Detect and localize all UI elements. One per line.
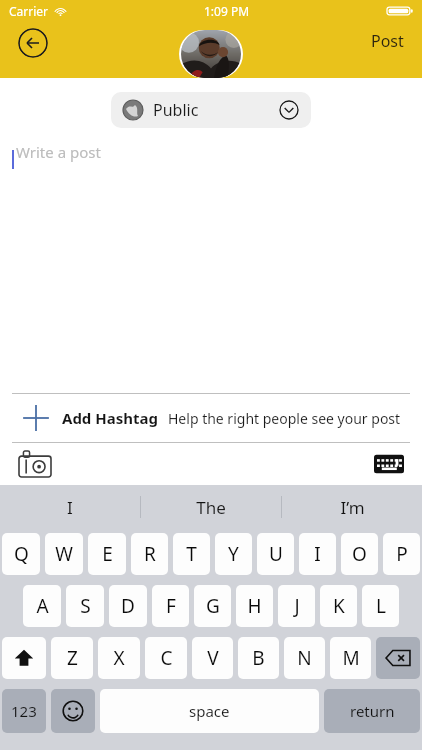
staticText: Public <box>153 99 199 121</box>
button[interactable]: E <box>88 533 126 575</box>
staticText: I <box>67 496 73 519</box>
button[interactable]: B <box>238 637 279 679</box>
button[interactable]: The <box>141 485 281 529</box>
button[interactable]: G <box>194 585 231 627</box>
button[interactable]: Profile photo <box>179 30 243 78</box>
staticText: T <box>186 541 197 567</box>
button[interactable]: Shift <box>2 637 46 679</box>
staticText: space <box>189 701 230 721</box>
staticText: Post <box>371 30 404 52</box>
staticText: Z <box>67 645 78 671</box>
button[interactable]: Back <box>18 28 48 58</box>
staticText: P <box>396 541 408 567</box>
button[interactable]: R <box>131 533 168 575</box>
button[interactable]: L <box>362 585 399 627</box>
staticText: N <box>297 645 312 671</box>
staticText: D <box>121 593 135 619</box>
staticText: K <box>333 593 345 619</box>
button[interactable]: S <box>66 585 104 627</box>
staticText: B <box>252 645 265 671</box>
button[interactable]: X <box>98 637 140 679</box>
button[interactable]: I’m <box>282 485 422 529</box>
button[interactable]: Backspace <box>376 637 420 679</box>
staticText: 123 <box>11 701 37 721</box>
button[interactable]: N <box>284 637 325 679</box>
staticText: G <box>206 593 220 619</box>
button[interactable]: M <box>330 637 371 679</box>
button[interactable]: F <box>152 585 189 627</box>
staticText: U <box>269 541 283 567</box>
staticText: Add Hashtag <box>62 408 158 428</box>
button[interactable]: P <box>383 533 420 575</box>
button[interactable]: H <box>236 585 273 627</box>
button[interactable]: Z <box>51 637 93 679</box>
staticText: 1:09 PM <box>204 3 250 19</box>
button[interactable]: C <box>145 637 187 679</box>
button[interactable]: Y <box>215 533 252 575</box>
staticText: F <box>166 593 176 619</box>
staticText: S <box>80 593 91 619</box>
button[interactable]: space <box>100 689 319 733</box>
staticText: W <box>55 541 73 567</box>
staticText: R <box>144 541 156 567</box>
staticText: Write a post <box>16 142 101 162</box>
button[interactable]: D <box>109 585 147 627</box>
staticText: Y <box>228 541 239 567</box>
staticText: X <box>113 645 125 671</box>
staticText: J <box>294 593 300 619</box>
button[interactable]: K <box>320 585 357 627</box>
button[interactable]: W <box>45 533 83 575</box>
button[interactable]: O <box>341 533 378 575</box>
staticText: O <box>352 541 367 567</box>
staticText: return <box>350 701 395 721</box>
button[interactable]: V <box>192 637 233 679</box>
staticText: M <box>342 645 360 671</box>
staticText: Help the right people see your post <box>168 409 401 428</box>
button[interactable]: Q <box>2 533 40 575</box>
staticText: I’m <box>340 496 365 519</box>
button[interactable]: Hide keyboard <box>374 453 404 475</box>
button[interactable]: I <box>299 533 336 575</box>
staticText: C <box>160 645 173 671</box>
button[interactable]: Add Hashtag <box>0 394 422 442</box>
button[interactable]: 123 <box>2 689 46 733</box>
staticText: Carrier <box>9 3 49 19</box>
button[interactable]: return <box>324 689 420 733</box>
button[interactable]: Add photo <box>18 450 52 478</box>
staticText: H <box>247 593 262 619</box>
button[interactable]: A <box>23 585 61 627</box>
staticText: V <box>207 645 219 671</box>
staticText: L <box>376 593 386 619</box>
button[interactable]: Post <box>367 27 408 55</box>
staticText: E <box>102 541 113 567</box>
staticText: The <box>196 496 226 519</box>
button[interactable]: U <box>257 533 294 575</box>
staticText: I <box>314 541 321 567</box>
button[interactable]: Public <box>111 92 311 128</box>
button[interactable]: J <box>278 585 315 627</box>
staticText: Q <box>14 541 29 567</box>
button[interactable]: Emoji <box>51 689 95 733</box>
button[interactable]: T <box>173 533 210 575</box>
button[interactable]: I <box>0 485 140 529</box>
staticText: A <box>36 593 49 619</box>
